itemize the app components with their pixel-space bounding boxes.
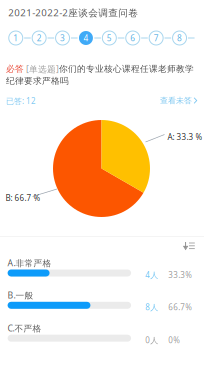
staticText: 3 xyxy=(60,32,65,44)
staticText: 4 xyxy=(83,32,88,44)
staticText: B.一般 xyxy=(7,289,33,301)
staticText: 2 xyxy=(37,32,42,44)
button[interactable]: 7 xyxy=(148,30,164,46)
button[interactable]: 4 xyxy=(78,30,94,46)
staticText: 必答 xyxy=(6,63,24,74)
staticText: [单选题] xyxy=(24,63,59,75)
staticText: 纪律要求严格吗 xyxy=(6,75,69,86)
staticText: 0% xyxy=(168,335,180,346)
button[interactable]: 已答: 12 xyxy=(4,93,38,108)
staticText: 8人 xyxy=(145,302,158,313)
button[interactable]: 1 xyxy=(8,30,24,46)
staticText: 66.7% xyxy=(168,302,192,313)
staticText: 4人 xyxy=(145,269,158,280)
button[interactable]: 3 xyxy=(54,30,70,46)
staticText: B: 66.7 % xyxy=(5,192,40,203)
staticText: 7 xyxy=(154,32,159,44)
staticText: 6 xyxy=(130,32,135,44)
staticText: 33.3% xyxy=(168,269,192,280)
button[interactable]: 8 xyxy=(171,30,187,46)
button[interactable]: 6 xyxy=(125,30,141,46)
staticText: 8 xyxy=(177,32,182,44)
button[interactable]: 2 xyxy=(31,30,47,46)
button[interactable]: 查看未答 xyxy=(158,93,199,108)
button[interactable]: Sort xyxy=(180,238,198,254)
staticText: 1 xyxy=(13,32,18,44)
staticText: 查看未答 xyxy=(160,95,192,106)
button[interactable]: 5 xyxy=(101,30,117,46)
staticText: 0人 xyxy=(145,335,158,346)
staticText: 2021-2022-2座谈会调查问卷 xyxy=(8,6,138,19)
staticText: 5 xyxy=(107,32,112,44)
staticText: A: 33.3 % xyxy=(167,131,202,142)
staticText: 你们的专业核心课程任课老师教学 xyxy=(59,63,194,74)
staticText: A.非常严格 xyxy=(7,257,51,269)
staticText: C.不严格 xyxy=(7,322,41,334)
staticText: 已答: 12 xyxy=(6,95,36,106)
